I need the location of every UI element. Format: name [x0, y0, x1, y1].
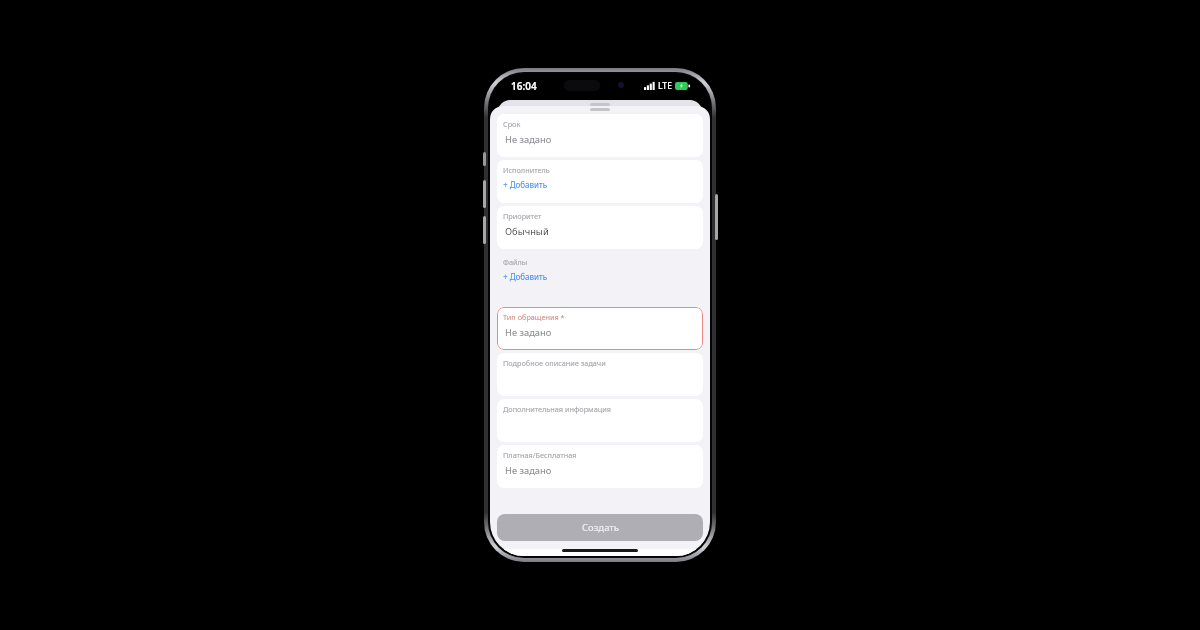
staticText: Дополнительная информация — [503, 404, 611, 414]
staticText: Исполнитель — [503, 165, 550, 175]
button[interactable]: Создать — [497, 514, 703, 541]
staticText: 16:04 — [511, 79, 537, 93]
button[interactable]: Срок — [497, 114, 703, 157]
staticText: Не задано — [505, 133, 552, 146]
staticText: Файлы — [503, 257, 528, 267]
staticText: Тип обращения * — [503, 312, 565, 322]
staticText: Не задано — [505, 464, 552, 477]
staticText: Срок — [503, 119, 521, 129]
staticText: Приоритет — [503, 211, 542, 221]
staticText: Создать — [582, 521, 619, 534]
staticText: Обычный — [505, 225, 549, 238]
button[interactable]: Исполнитель — [497, 160, 703, 203]
button[interactable]: Подробное описание задачи — [497, 353, 703, 396]
button[interactable]: Файлы — [497, 252, 703, 295]
button[interactable]: Платная/Бесплатная — [497, 445, 703, 488]
staticText: + Добавить — [503, 179, 548, 190]
button[interactable]: Дополнительная информация — [497, 399, 703, 442]
button[interactable]: Приоритет — [497, 206, 703, 249]
staticText: LTE — [658, 80, 672, 92]
staticText: + Добавить — [503, 271, 548, 282]
staticText: Не задано — [505, 326, 552, 339]
staticText: Подробное описание задачи — [503, 358, 606, 368]
staticText: Платная/Бесплатная — [503, 450, 577, 460]
button[interactable]: Тип обращения * — [497, 307, 703, 350]
